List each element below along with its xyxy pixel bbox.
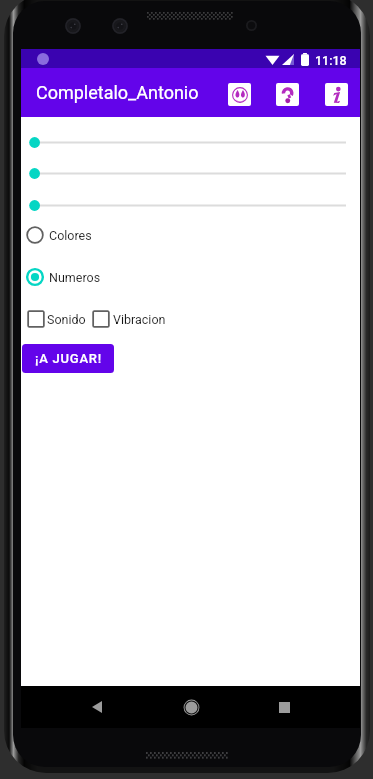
button[interactable]: Recent apps xyxy=(270,693,298,721)
button[interactable]: Slider xyxy=(21,196,360,214)
staticText: Numeros xyxy=(49,270,101,285)
button[interactable]: Numeros xyxy=(21,266,151,288)
staticText: 11:18 xyxy=(315,53,347,68)
staticText: Completalo_Antonio xyxy=(36,82,199,103)
staticText: Colores xyxy=(49,228,92,243)
button[interactable]: Home xyxy=(177,693,205,721)
button[interactable]: ¡A JUGAR! xyxy=(22,344,114,373)
staticText: ¡A JUGAR! xyxy=(35,351,102,366)
button[interactable]: Slider xyxy=(21,164,360,182)
button[interactable]: Vibracion xyxy=(91,308,166,330)
button[interactable]: Sonido xyxy=(26,308,86,330)
button[interactable]: Emoji xyxy=(228,83,251,106)
button[interactable]: Info xyxy=(325,83,348,106)
button[interactable]: Back xyxy=(83,693,111,721)
button[interactable]: Help xyxy=(276,83,299,106)
staticText: Vibracion xyxy=(113,312,166,327)
button[interactable]: Colores xyxy=(21,224,151,246)
button[interactable]: Slider xyxy=(21,133,360,151)
staticText: Sonido xyxy=(47,312,86,327)
